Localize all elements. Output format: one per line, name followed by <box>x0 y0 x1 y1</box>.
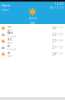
staticText: Paris <box>1 2 10 8</box>
staticText: Mon 8 Jul <box>50 6 64 10</box>
staticText: Sat <box>7 51 10 54</box>
staticText: 21° <box>52 46 57 49</box>
staticText: 14:05 <box>55 2 64 6</box>
staticText: 22° <box>52 33 57 36</box>
staticText: Sun <box>7 54 12 58</box>
staticText: 17° <box>58 26 63 30</box>
staticText: Sun <box>7 28 12 32</box>
button[interactable]: Thu <box>0 38 65 44</box>
button[interactable]: Wed <box>0 31 65 38</box>
button[interactable]: Fri <box>0 44 65 51</box>
staticText: Sun <box>7 41 12 45</box>
staticText: Tue <box>7 25 12 28</box>
staticText: Sunny <box>28 16 36 20</box>
staticText: Wed <box>7 31 13 35</box>
staticText: 28° <box>52 52 57 56</box>
staticText: 27° <box>52 39 57 43</box>
button[interactable]: Sat <box>0 51 65 57</box>
staticText: 19° <box>58 52 63 56</box>
staticText: 14° <box>58 46 63 49</box>
staticText: 15° <box>58 33 63 36</box>
staticText: 24° <box>29 21 35 26</box>
staticText: Cloud <box>7 48 16 51</box>
staticText: France <box>1 8 9 11</box>
staticText: 26° <box>52 26 57 30</box>
staticText: Thu <box>7 38 12 41</box>
staticText: Cloud <box>7 35 16 38</box>
staticText: 18° <box>58 39 63 43</box>
staticText: Fri <box>7 44 10 48</box>
button[interactable]: Tue <box>0 25 65 31</box>
